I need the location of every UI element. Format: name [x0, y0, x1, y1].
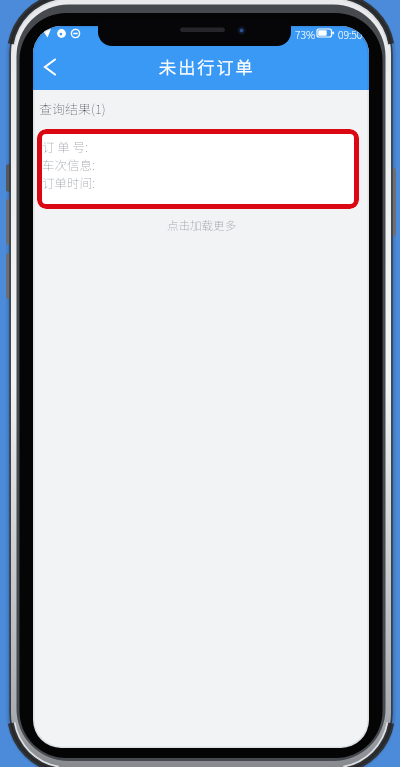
button[interactable]: 订 单 号: [37, 129, 359, 209]
staticText: 73% [295, 27, 316, 42]
staticText: 点击加载更多 [167, 217, 236, 234]
staticText: 09:50 [338, 27, 363, 42]
staticText: 订单时间: [42, 173, 95, 191]
staticText: 订 单 号: [42, 137, 88, 155]
button[interactable]: 点击加载更多 [33, 215, 369, 235]
staticText: 未出行订单 [159, 54, 255, 79]
staticText: 查询结果(1) [39, 99, 106, 118]
button[interactable] [33, 50, 70, 84]
staticText: 车次信息: [42, 155, 95, 173]
